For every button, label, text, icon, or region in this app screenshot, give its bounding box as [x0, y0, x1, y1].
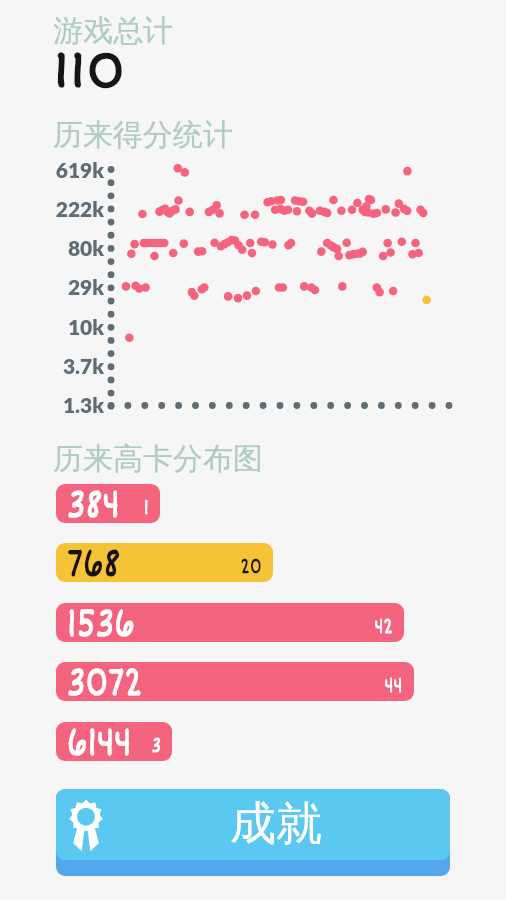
- staticText: 3072: [67, 662, 143, 698]
- staticText: 80k: [38, 235, 104, 260]
- staticText: 44: [384, 673, 403, 698]
- staticText: 1: [144, 495, 149, 520]
- staticText: 历来高卡分布图: [53, 440, 263, 478]
- other: Achievements: [69, 800, 103, 850]
- staticText: 768: [67, 543, 121, 579]
- button[interactable]: Achievements: [56, 789, 450, 876]
- staticText: 384: [67, 484, 120, 520]
- button[interactable]: 6144: [56, 722, 172, 761]
- staticText: 成就: [230, 795, 322, 853]
- staticText: 1.3k: [38, 392, 104, 417]
- staticText: 20: [240, 554, 262, 579]
- staticText: 10k: [38, 314, 104, 339]
- staticText: 1536: [67, 603, 135, 639]
- staticText: 222k: [38, 196, 104, 221]
- staticText: 110: [53, 40, 126, 102]
- staticText: 29k: [38, 274, 104, 299]
- button[interactable]: 768: [56, 543, 273, 582]
- staticText: 3.7k: [38, 353, 104, 378]
- button[interactable]: 3072: [56, 662, 414, 701]
- staticText: 3: [151, 733, 161, 758]
- button[interactable]: 1536: [56, 603, 404, 642]
- staticText: 游戏总计: [53, 12, 173, 50]
- staticText: 42: [374, 614, 393, 639]
- staticText: 历来得分统计: [53, 116, 233, 154]
- staticText: 619k: [38, 157, 104, 182]
- staticText: 6144: [67, 722, 132, 758]
- button[interactable]: 384: [56, 484, 160, 523]
